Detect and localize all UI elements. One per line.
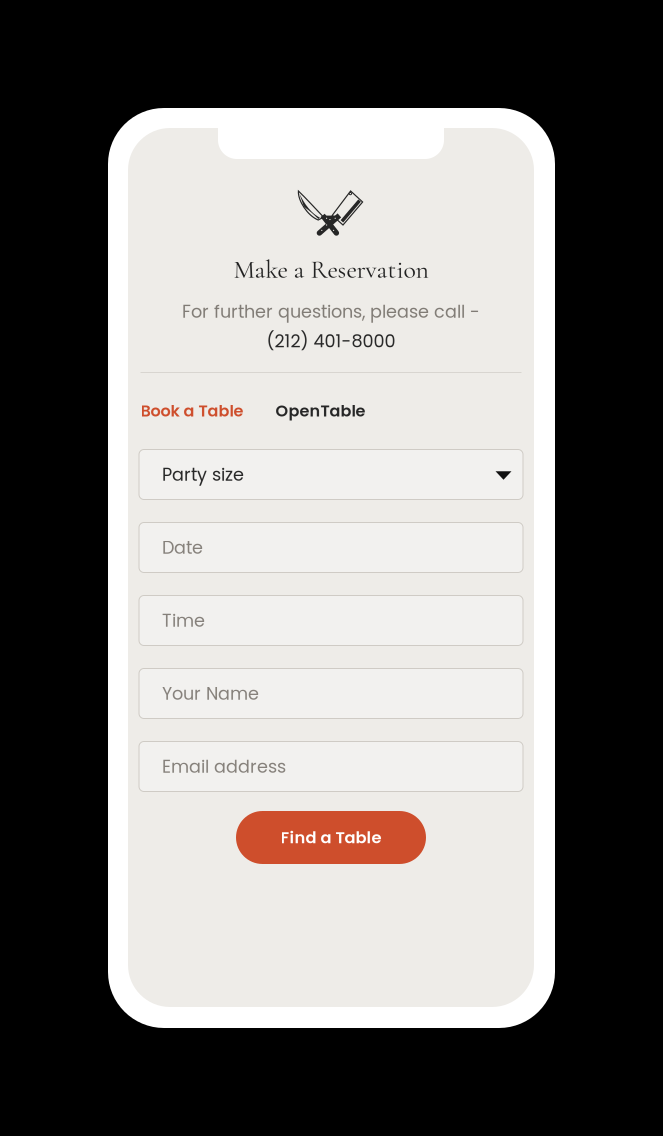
- staticText: Time: [162, 608, 205, 633]
- button[interactable]: Email address: [139, 741, 523, 791]
- staticText: Find a Table: [280, 826, 381, 849]
- button[interactable]: Party size: [139, 449, 523, 499]
- staticText: Make a Reservation: [233, 254, 428, 285]
- button[interactable]: Your Name: [139, 668, 523, 718]
- staticText: (212) 401-8000: [266, 329, 395, 353]
- button[interactable]: Book a Table: [140, 400, 243, 422]
- button[interactable]: Find a Table: [236, 811, 426, 864]
- staticText: Party size: [162, 462, 244, 487]
- button[interactable]: Date: [139, 522, 523, 572]
- staticText: Book a Table: [140, 400, 243, 422]
- button[interactable]: Time: [139, 595, 523, 645]
- staticText: Your Name: [162, 681, 259, 706]
- button[interactable]: OpenTable: [275, 400, 365, 422]
- staticText: Date: [162, 535, 203, 560]
- staticText: Email address: [162, 754, 286, 779]
- staticText: OpenTable: [275, 400, 365, 422]
- staticText: For further questions, please call -: [182, 299, 480, 324]
